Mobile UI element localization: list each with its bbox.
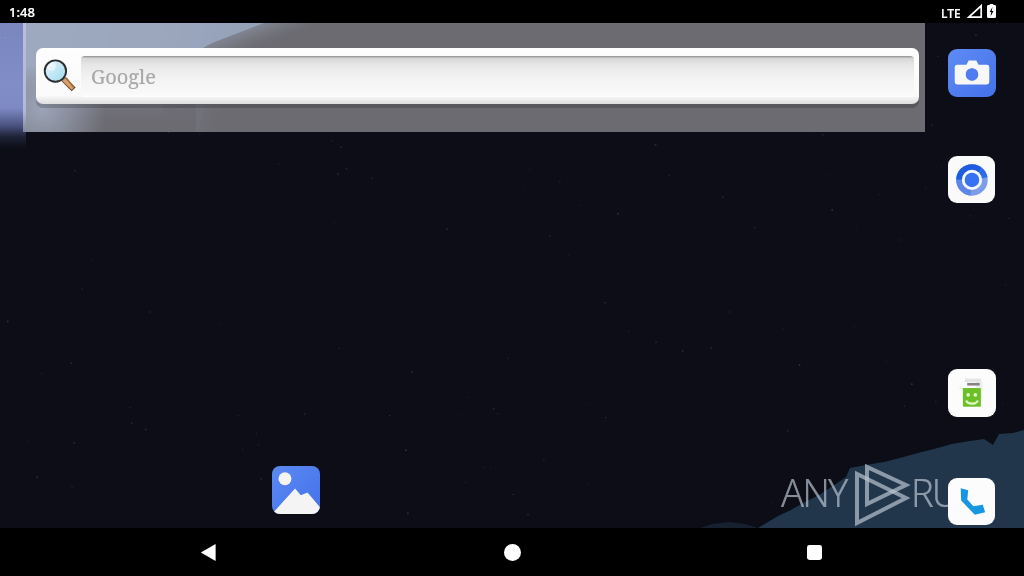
staticText: LTE	[941, 5, 961, 21]
button[interactable]: Dev Tools	[948, 369, 996, 417]
staticText: Gallery	[278, 525, 315, 540]
staticText: Google	[91, 63, 157, 90]
staticText: RU	[911, 466, 958, 518]
button[interactable]: Phone	[948, 478, 995, 525]
button[interactable]: Browser	[948, 156, 995, 203]
staticText: ANY	[781, 466, 847, 518]
button[interactable]: Home	[490, 530, 534, 574]
button[interactable]: Recent apps	[792, 530, 836, 574]
button[interactable]: Back	[186, 530, 230, 574]
button[interactable]: Camera	[948, 49, 996, 97]
staticText: 1:48	[9, 3, 35, 21]
button[interactable]: Gallery	[272, 466, 320, 540]
button[interactable]: Google	[36, 48, 919, 104]
button[interactable]: Google	[26, 23, 925, 132]
